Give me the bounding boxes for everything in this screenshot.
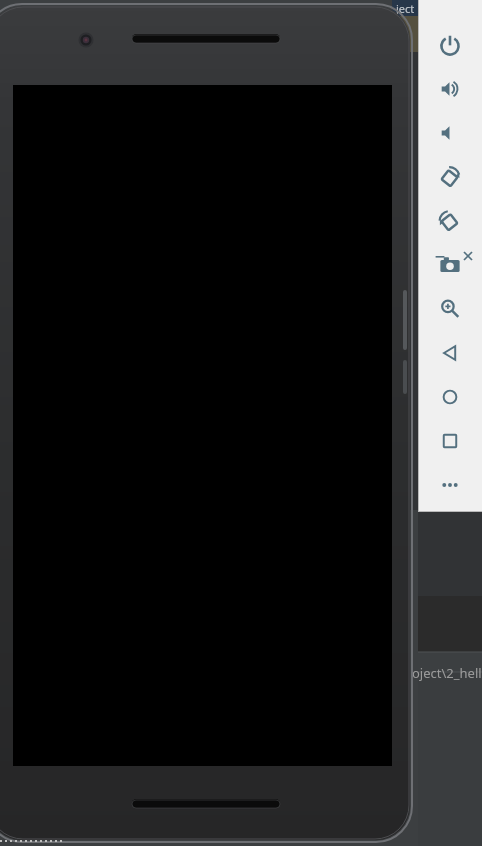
- button[interactable]: Power: [428, 28, 472, 62]
- button[interactable]: Rotate left: [428, 160, 472, 194]
- staticText: ject: [396, 1, 415, 16]
- button[interactable]: Volume down: [428, 116, 472, 150]
- button[interactable]: Take screenshot: [428, 248, 472, 282]
- staticText: oject\2_hello: [412, 664, 482, 682]
- button[interactable]: Minimize: [430, 246, 450, 266]
- button[interactable]: Overview: [428, 424, 472, 458]
- button[interactable]: Zoom: [428, 292, 472, 326]
- button[interactable]: Rotate right: [428, 204, 472, 238]
- button[interactable]: Close: [458, 246, 478, 266]
- button[interactable]: Home: [428, 380, 472, 414]
- button[interactable]: More: [428, 468, 472, 502]
- button[interactable]: Back: [428, 336, 472, 370]
- button[interactable]: Volume up: [428, 72, 472, 106]
